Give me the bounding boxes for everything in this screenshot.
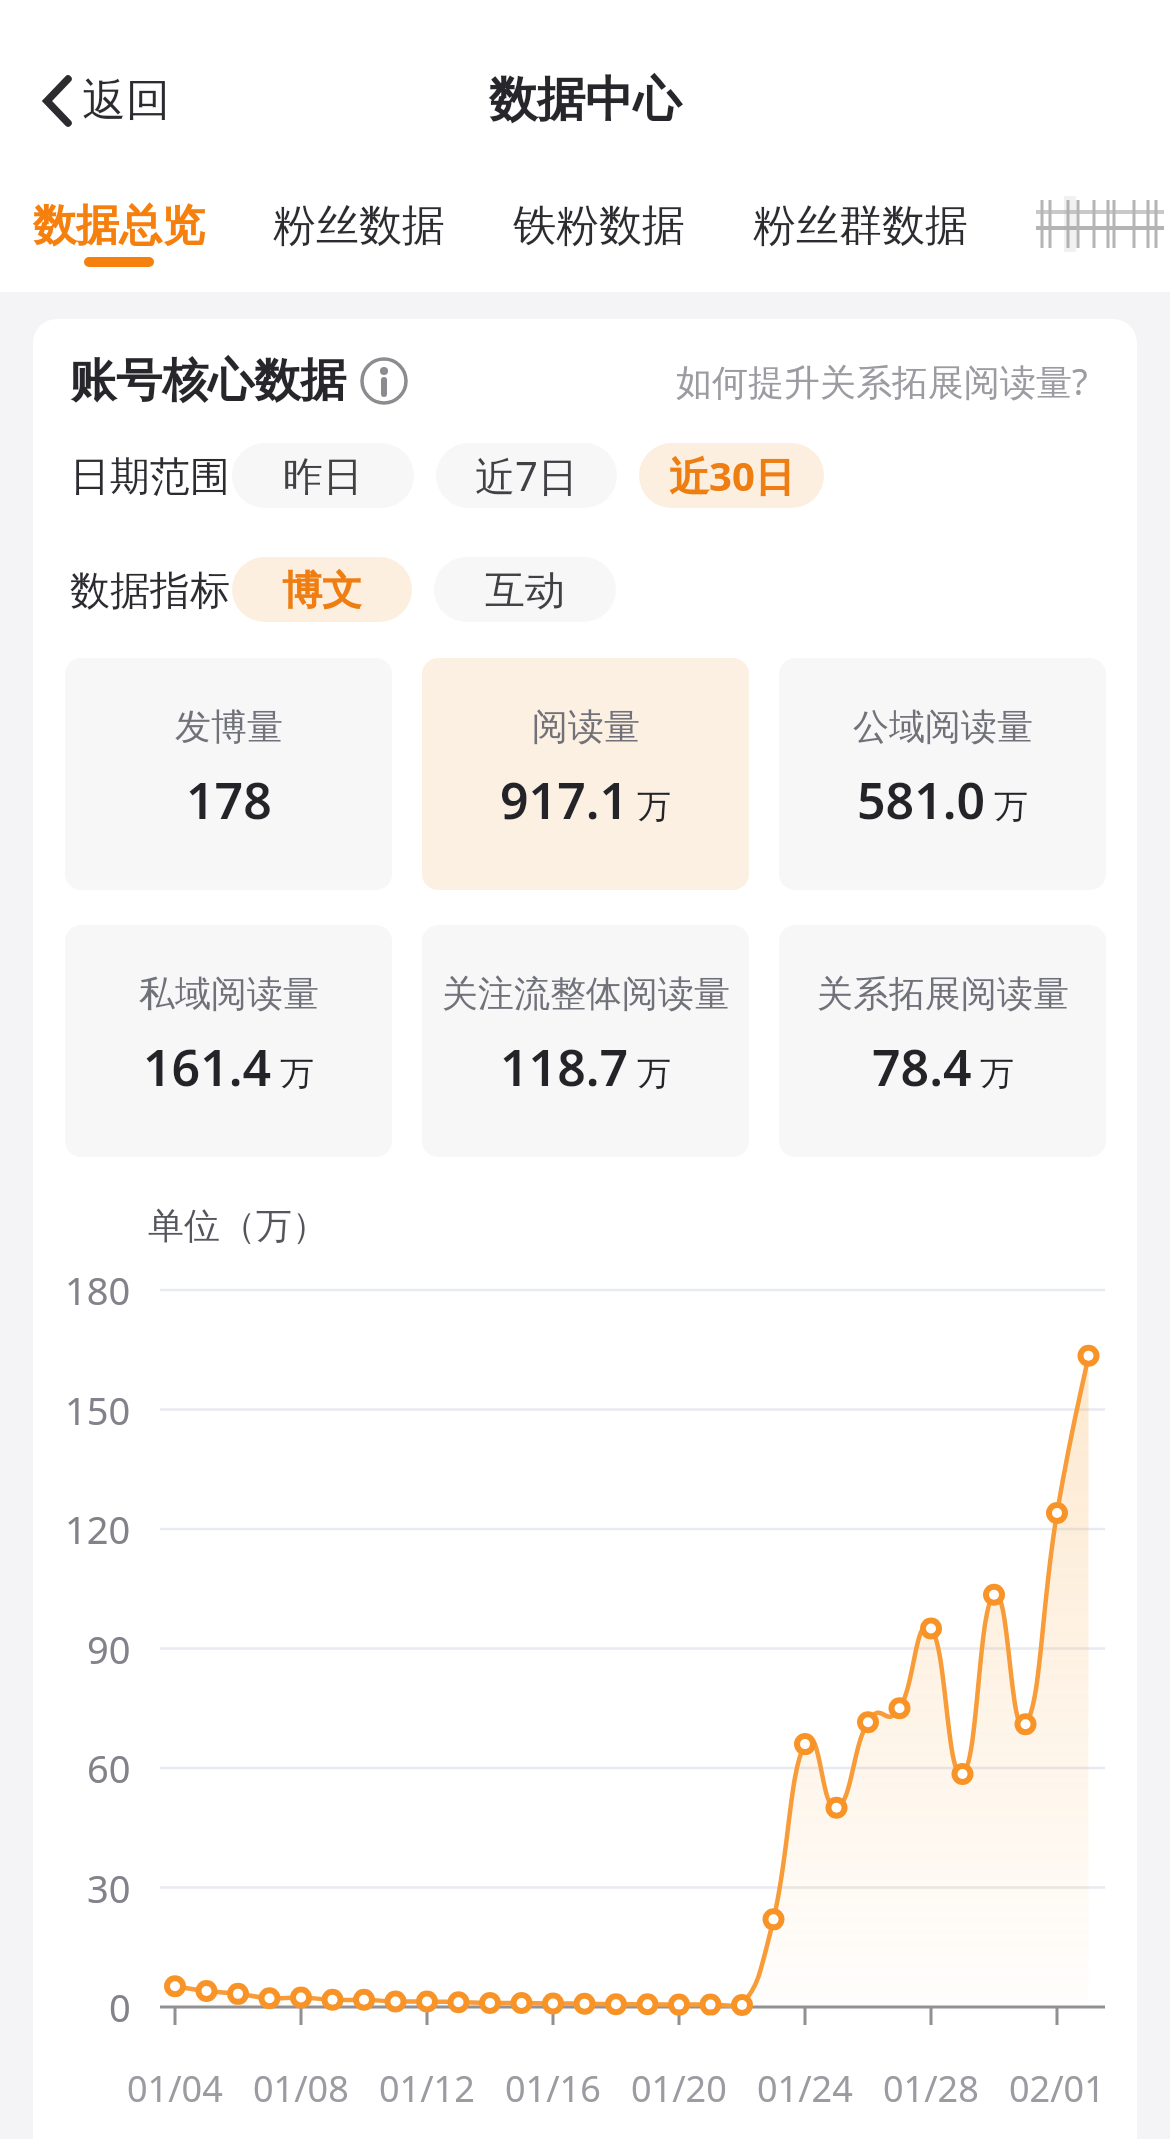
button[interactable]: 返回 (40, 73, 170, 128)
staticText: 近7日 (475, 448, 578, 503)
staticText: 万 (980, 1052, 1014, 1095)
button[interactable]: 互动 (434, 557, 616, 622)
staticText: 昨日 (283, 451, 363, 501)
staticText: 161.4 (143, 1033, 272, 1101)
staticText: 581.0 (857, 766, 986, 834)
button[interactable]: 私域阅读量 (65, 925, 392, 1157)
staticText: 铁粉数据 (513, 199, 685, 253)
button[interactable]: 昨日 (232, 443, 414, 508)
staticText: 粉丝数据 (273, 199, 445, 253)
staticText: 公域阅读量 (853, 704, 1033, 749)
button[interactable]: 公域阅读量 (779, 658, 1106, 890)
staticText: 日期范围 (70, 451, 230, 501)
staticText: 数据总览 (33, 199, 205, 253)
staticText: 账号核心数据 (70, 352, 346, 410)
staticText: 万 (994, 785, 1028, 828)
button[interactable]: 博文 (232, 557, 412, 622)
staticText: 78.4 (872, 1033, 972, 1101)
button[interactable]: 发博量 (65, 658, 392, 890)
button[interactable]: 粉丝群数据 (753, 199, 968, 267)
staticText: 博文 (282, 565, 362, 615)
staticText: 917.1 (500, 766, 629, 834)
staticText: 阅读量 (532, 704, 640, 749)
staticText: 单位（万） (148, 1203, 328, 1248)
staticText: 关系拓展阅读量 (817, 971, 1069, 1016)
staticText: 178 (186, 766, 272, 834)
staticText: 数据中心 (489, 70, 681, 130)
staticText: 万 (280, 1052, 314, 1095)
staticText: 粉丝群数据 (753, 199, 968, 253)
button[interactable]: 近7日 (436, 443, 617, 508)
staticText: 118.7 (500, 1033, 629, 1101)
staticText: 私域阅读量 (139, 971, 319, 1016)
staticText: 万 (637, 1052, 671, 1095)
staticText: 发博量 (175, 704, 283, 749)
staticText: 数据指标 (70, 565, 230, 615)
button[interactable]: 粉丝数据 (273, 199, 445, 267)
staticText: 返回 (82, 73, 170, 128)
button[interactable]: 阅读量 (422, 658, 749, 890)
staticText: 关注流整体阅读量 (442, 971, 730, 1016)
button[interactable]: 近30日 (639, 443, 824, 508)
button[interactable]: 如何提升关系拓展阅读量? (676, 357, 1088, 406)
staticText: 近30日 (669, 448, 795, 503)
button[interactable]: 关注流整体阅读量 (422, 925, 749, 1157)
staticText: 互动 (485, 565, 565, 615)
button[interactable]: 数据总览 (33, 199, 205, 267)
button[interactable]: 关系拓展阅读量 (779, 925, 1106, 1157)
button[interactable]: 铁粉数据 (513, 199, 685, 267)
staticText: 万 (637, 785, 671, 828)
